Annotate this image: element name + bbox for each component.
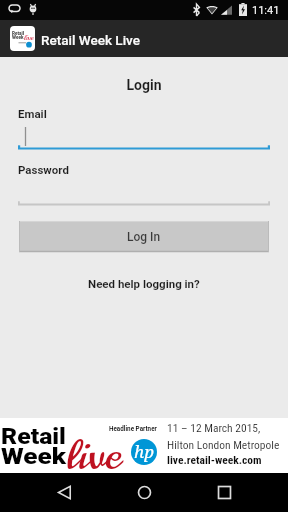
staticText: Log In [127, 230, 161, 244]
staticText: Hilton London Metropole [167, 438, 280, 451]
button[interactable]: Home [120, 473, 168, 512]
staticText: hp [134, 440, 154, 463]
staticText: Password [18, 163, 69, 176]
button[interactable]: HP [131, 439, 157, 465]
button[interactable]: App icon [10, 26, 35, 51]
button[interactable] [18, 124, 270, 150]
staticText: Week [12, 35, 24, 40]
staticText: live [24, 32, 34, 43]
button[interactable]: Retail [0, 418, 288, 473]
staticText: 11:41 [252, 4, 280, 17]
button[interactable]: Recent apps [200, 473, 248, 512]
staticText: Week [1, 443, 67, 469]
staticText: Need help logging in? [88, 277, 200, 290]
button[interactable]: Need help logging in? [0, 275, 288, 291]
staticText: 11 – 12 March 2015, [167, 421, 261, 434]
staticText: Retail [1, 423, 66, 449]
button[interactable]: Log In [19, 221, 269, 252]
staticText: Headline Partner [109, 425, 157, 432]
staticText: live [66, 429, 121, 483]
staticText: live.retail-week.com [167, 453, 262, 466]
staticText: Retail [12, 31, 25, 36]
button[interactable]: Back [40, 473, 88, 512]
staticText: Retail Week Live [41, 32, 140, 48]
staticText: Email [18, 107, 47, 120]
button[interactable] [18, 180, 270, 206]
staticText: Login [0, 77, 288, 93]
